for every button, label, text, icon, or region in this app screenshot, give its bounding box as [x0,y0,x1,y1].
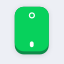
button[interactable]: Unlock [15,7,49,54]
